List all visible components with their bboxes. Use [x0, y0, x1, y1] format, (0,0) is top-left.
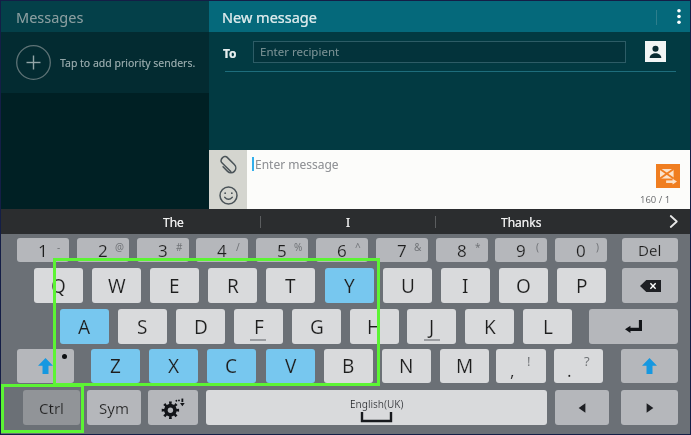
staticText: * [475, 240, 481, 254]
staticText: New message [222, 7, 317, 27]
staticText: . [567, 359, 572, 382]
button[interactable]: Sym [87, 390, 141, 425]
staticText: To [223, 45, 237, 61]
button[interactable]: S [118, 309, 167, 344]
button[interactable]: The [93, 209, 253, 234]
button[interactable]: E [150, 268, 199, 303]
button[interactable]: 2 [77, 238, 129, 262]
staticText: E [169, 273, 180, 299]
staticText: P [576, 273, 588, 299]
staticText: A [78, 314, 91, 340]
button[interactable]: M [440, 349, 489, 383]
button[interactable]: 3 [137, 238, 189, 262]
button[interactable]: I [441, 268, 490, 303]
button[interactable]: Ctrl [23, 390, 80, 425]
staticText: Z [110, 353, 121, 379]
button[interactable]: B [324, 349, 373, 383]
button[interactable]: More options [667, 1, 690, 32]
staticText: @ [115, 240, 124, 254]
staticText: B [342, 353, 355, 379]
staticText: G [310, 314, 324, 340]
button[interactable]: English(UK) [206, 390, 547, 425]
staticText: Messages [16, 7, 84, 27]
button[interactable]: F [234, 309, 283, 344]
button[interactable]: 4 [196, 238, 248, 262]
button[interactable]: Shift [17, 349, 74, 383]
staticText: M [456, 353, 474, 379]
button[interactable]: U [383, 268, 432, 303]
button[interactable]: Right [621, 390, 678, 425]
staticText: 9 [516, 239, 526, 262]
staticText: - [57, 240, 61, 254]
button[interactable]: Insert emoticon [209, 180, 247, 210]
button[interactable]: 7 [376, 238, 428, 262]
staticText: X [168, 353, 180, 379]
staticText: S [137, 314, 148, 340]
staticText: R [227, 273, 239, 299]
button[interactable]: T [266, 268, 315, 303]
button[interactable]: , [496, 349, 546, 383]
staticText: % [294, 240, 303, 254]
button[interactable]: Y [325, 268, 374, 303]
button[interactable]: 6 [316, 238, 368, 262]
button[interactable]: Q [34, 268, 83, 303]
button[interactable]: Z [91, 349, 140, 383]
button[interactable]: D [176, 309, 225, 344]
button[interactable]: Backspace [622, 268, 678, 303]
button[interactable]: 0 [555, 238, 607, 262]
button[interactable]: 1 [17, 238, 69, 262]
button[interactable]: W [92, 268, 141, 303]
button[interactable]: Tap to add priority senders. [1, 32, 209, 93]
staticText: K [484, 314, 496, 340]
button[interactable]: K [465, 309, 514, 344]
staticText: 1 [38, 239, 48, 262]
staticText: T [285, 273, 296, 299]
button[interactable]: C [207, 349, 256, 383]
staticText: O [516, 273, 531, 299]
staticText: 4 [217, 239, 227, 262]
button[interactable]: Del [622, 238, 678, 262]
button[interactable]: Left [555, 390, 609, 425]
button[interactable]: Attach [209, 150, 247, 180]
button[interactable]: A [60, 309, 109, 344]
button[interactable]: P [557, 268, 606, 303]
staticText: 3 [158, 239, 168, 262]
button[interactable]: G [292, 309, 341, 344]
button[interactable]: Settings [148, 390, 198, 425]
button[interactable]: R [208, 268, 257, 303]
staticText: I [346, 214, 351, 230]
staticText: 7 [397, 239, 407, 262]
button[interactable]: J [407, 309, 456, 344]
staticText: ( [536, 240, 539, 254]
button[interactable]: V [266, 349, 315, 383]
staticText: Tap to add priority senders. [60, 56, 196, 70]
staticText: , [510, 359, 515, 382]
staticText: J [429, 314, 435, 340]
button[interactable]: 8 [436, 238, 488, 262]
staticText: N [399, 353, 414, 379]
button[interactable]: Choose contact [645, 41, 666, 62]
button[interactable]: Enter [589, 309, 678, 344]
button[interactable]: N [382, 349, 431, 383]
staticText: U [401, 273, 415, 299]
staticText: C [225, 353, 238, 379]
staticText: Ctrl [39, 398, 64, 418]
button[interactable]: L [523, 309, 572, 344]
button[interactable]: 5 [256, 238, 308, 262]
staticText: The [163, 214, 184, 230]
button[interactable]: 9 [495, 238, 547, 262]
staticText: Del [638, 240, 662, 260]
staticText: / [236, 240, 240, 254]
button[interactable]: . [554, 349, 603, 383]
button[interactable]: More suggestions [657, 209, 690, 234]
button[interactable]: H [350, 309, 399, 344]
button[interactable]: Shift [621, 349, 678, 383]
button[interactable]: Messages [1, 1, 209, 32]
button[interactable]: Thanks [441, 209, 601, 234]
button[interactable]: O [499, 268, 548, 303]
button[interactable]: Send [656, 164, 680, 188]
staticText: Sym [99, 398, 129, 418]
button[interactable]: Enter recipient [253, 41, 626, 63]
button[interactable]: X [149, 349, 198, 383]
button[interactable]: I [268, 209, 428, 234]
